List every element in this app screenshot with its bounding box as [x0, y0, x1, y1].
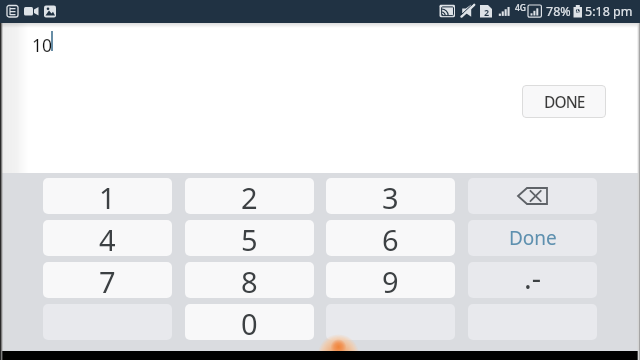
staticText: DONE — [544, 91, 585, 112]
staticText: 0 — [241, 304, 258, 340]
button[interactable]: 9 — [326, 262, 455, 298]
button[interactable]: Done — [468, 220, 597, 256]
button[interactable]: 8 — [185, 262, 314, 298]
staticText: 5:18 pm — [585, 3, 633, 20]
staticText: 78% — [546, 3, 571, 20]
button[interactable]: 0 — [185, 304, 314, 340]
staticText: 8 — [241, 262, 258, 298]
staticText: 1 — [99, 178, 116, 214]
staticText: 4G — [515, 2, 527, 14]
staticText: 6 — [382, 220, 399, 256]
staticText: 10 — [32, 33, 53, 57]
staticText: 2 — [484, 6, 490, 18]
button[interactable]: 3 — [326, 178, 455, 214]
button[interactable]: 4 — [43, 220, 172, 256]
staticText: 9 — [382, 262, 399, 298]
staticText: 3 — [382, 178, 399, 214]
staticText: 5 — [241, 220, 258, 256]
staticText: Done — [509, 225, 557, 251]
button[interactable]: 6 — [326, 220, 455, 256]
button[interactable]: DONE — [522, 85, 606, 118]
button[interactable]: 1 — [43, 178, 172, 214]
staticText: .- — [524, 262, 542, 294]
button[interactable]: 5 — [185, 220, 314, 256]
button[interactable]: Backspace — [468, 178, 597, 214]
button[interactable]: Blank key — [326, 304, 455, 340]
staticText: 7 — [99, 262, 116, 298]
button[interactable]: .- — [468, 262, 597, 298]
button[interactable]: 7 — [43, 262, 172, 298]
staticText: 2 — [241, 178, 258, 214]
staticText: 4 — [99, 220, 116, 256]
button[interactable]: 2 — [185, 178, 314, 214]
